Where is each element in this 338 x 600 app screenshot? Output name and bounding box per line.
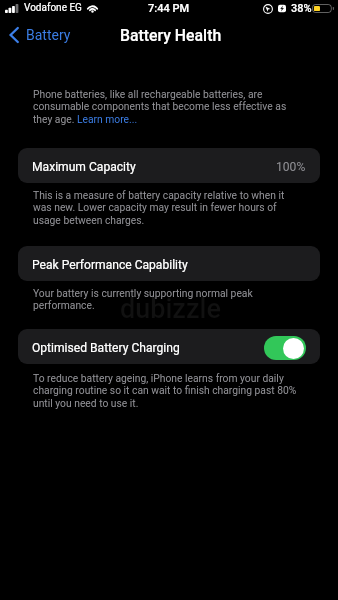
staticText: dubizzle — [120, 293, 221, 325]
staticText: 100% — [276, 160, 306, 174]
button[interactable]: Learn more about battery health — [77, 112, 137, 125]
button[interactable]: Maximum Capacity — [18, 148, 320, 183]
staticText: Phone batteries, like all rechargeable b… — [33, 88, 302, 126]
button[interactable]: Optimised Battery Charging — [18, 329, 320, 364]
button[interactable]: Peak Performance Capability — [18, 246, 320, 281]
staticText: Battery — [26, 27, 71, 43]
staticText: Peak Performance Capability — [32, 258, 188, 272]
staticText: Battery Health — [120, 26, 222, 45]
button[interactable]: Battery — [6, 23, 74, 47]
button[interactable]: Optimised Battery Charging toggle — [264, 336, 306, 360]
staticText: 38% — [291, 2, 312, 15]
staticText: Vodafone EG — [24, 2, 82, 14]
staticText: Maximum Capacity — [32, 160, 136, 174]
staticText: 7:44 PM — [148, 2, 190, 15]
staticText: Your battery is currently supporting nor… — [33, 287, 302, 312]
staticText: To reduce battery ageing, iPhone learns … — [33, 372, 302, 410]
staticText: Optimised Battery Charging — [32, 341, 180, 355]
staticText: This is a measure of battery capacity re… — [33, 189, 302, 227]
